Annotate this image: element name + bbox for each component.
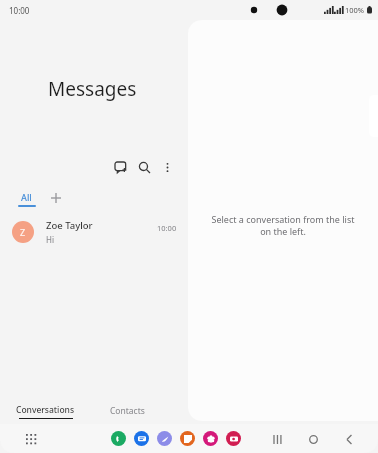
button[interactable]: All apps — [22, 430, 40, 448]
button[interactable]: Home — [304, 430, 322, 448]
button[interactable]: Recents — [268, 430, 286, 448]
button[interactable]: Search — [133, 156, 155, 178]
button[interactable]: More options — [156, 156, 178, 178]
staticText: Hi — [46, 234, 54, 245]
staticText: Zoe Taylor — [46, 219, 93, 232]
staticText: Messages — [48, 76, 137, 102]
button[interactable]: Camera — [226, 431, 241, 446]
staticText: Z — [20, 226, 26, 238]
button[interactable]: Conversations — [14, 400, 77, 422]
button[interactable]: Z — [0, 212, 188, 252]
staticText: Contacts — [110, 405, 145, 417]
staticText: 100% — [345, 5, 365, 15]
staticText: Conversations — [16, 404, 75, 416]
button[interactable]: Internet — [157, 431, 172, 446]
button[interactable]: Back — [340, 430, 358, 448]
button[interactable]: New conversation — [110, 156, 132, 178]
button[interactable]: Messages — [134, 431, 149, 446]
button[interactable]: All — [14, 188, 39, 210]
staticText: Select a conversation from the list on t… — [198, 213, 368, 238]
button[interactable]: Contacts — [110, 400, 145, 422]
button[interactable]: Gallery — [203, 431, 218, 446]
staticText: All — [21, 191, 32, 203]
button[interactable]: Notes — [180, 431, 195, 446]
staticText: 10:00 — [157, 223, 177, 233]
button[interactable]: Phone — [111, 431, 126, 446]
staticText: 10:00 — [9, 5, 30, 16]
button[interactable]: Add category — [46, 188, 66, 208]
